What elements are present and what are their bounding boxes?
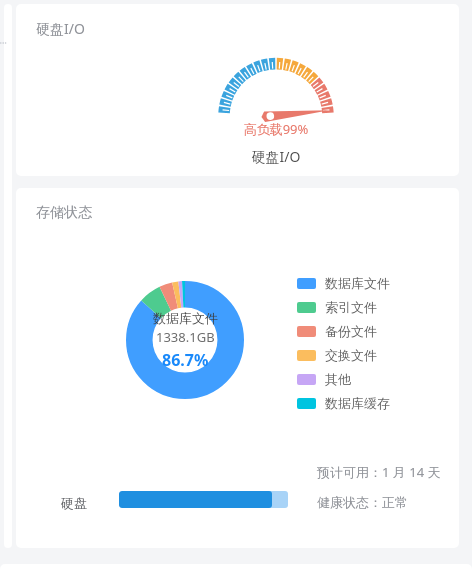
other: 存储占用环形图 [126, 281, 244, 399]
staticText: 硬盘I/O [228, 147, 324, 166]
staticText: 硬盘 [61, 495, 87, 511]
staticText: 健康状态：正常 [317, 494, 408, 510]
staticText: 其他 [325, 371, 351, 387]
staticText: 硬盘I/O [36, 19, 85, 38]
other: 硬盘I/O 仪表盘 [201, 42, 351, 134]
button[interactable]: 数据库缓存 [297, 391, 396, 415]
staticText: 数据库文件 [325, 275, 390, 291]
staticText: 数据库缓存 [325, 395, 390, 411]
button[interactable]: 索引文件 [297, 295, 383, 319]
button[interactable]: 其他 [297, 367, 357, 391]
staticText: 86.7% [162, 349, 209, 371]
staticText: 高负载99% [228, 120, 324, 138]
staticText: 备份文件 [325, 323, 377, 339]
button[interactable]: 存储状态 [16, 188, 459, 548]
staticText: 预计可用：1 月 14 天 [317, 463, 441, 481]
staticText: 存储状态 [36, 204, 92, 222]
button[interactable]: 备份文件 [297, 319, 383, 343]
button[interactable]: 交换文件 [297, 343, 383, 367]
staticText: 1338.1GB [156, 328, 215, 346]
staticText: 交换文件 [325, 347, 377, 363]
button[interactable]: 硬盘I/O [16, 4, 459, 176]
staticText: 数据库文件 [153, 310, 218, 326]
button[interactable]: 数据库文件 [297, 271, 396, 295]
staticText: 索引文件 [325, 299, 377, 315]
